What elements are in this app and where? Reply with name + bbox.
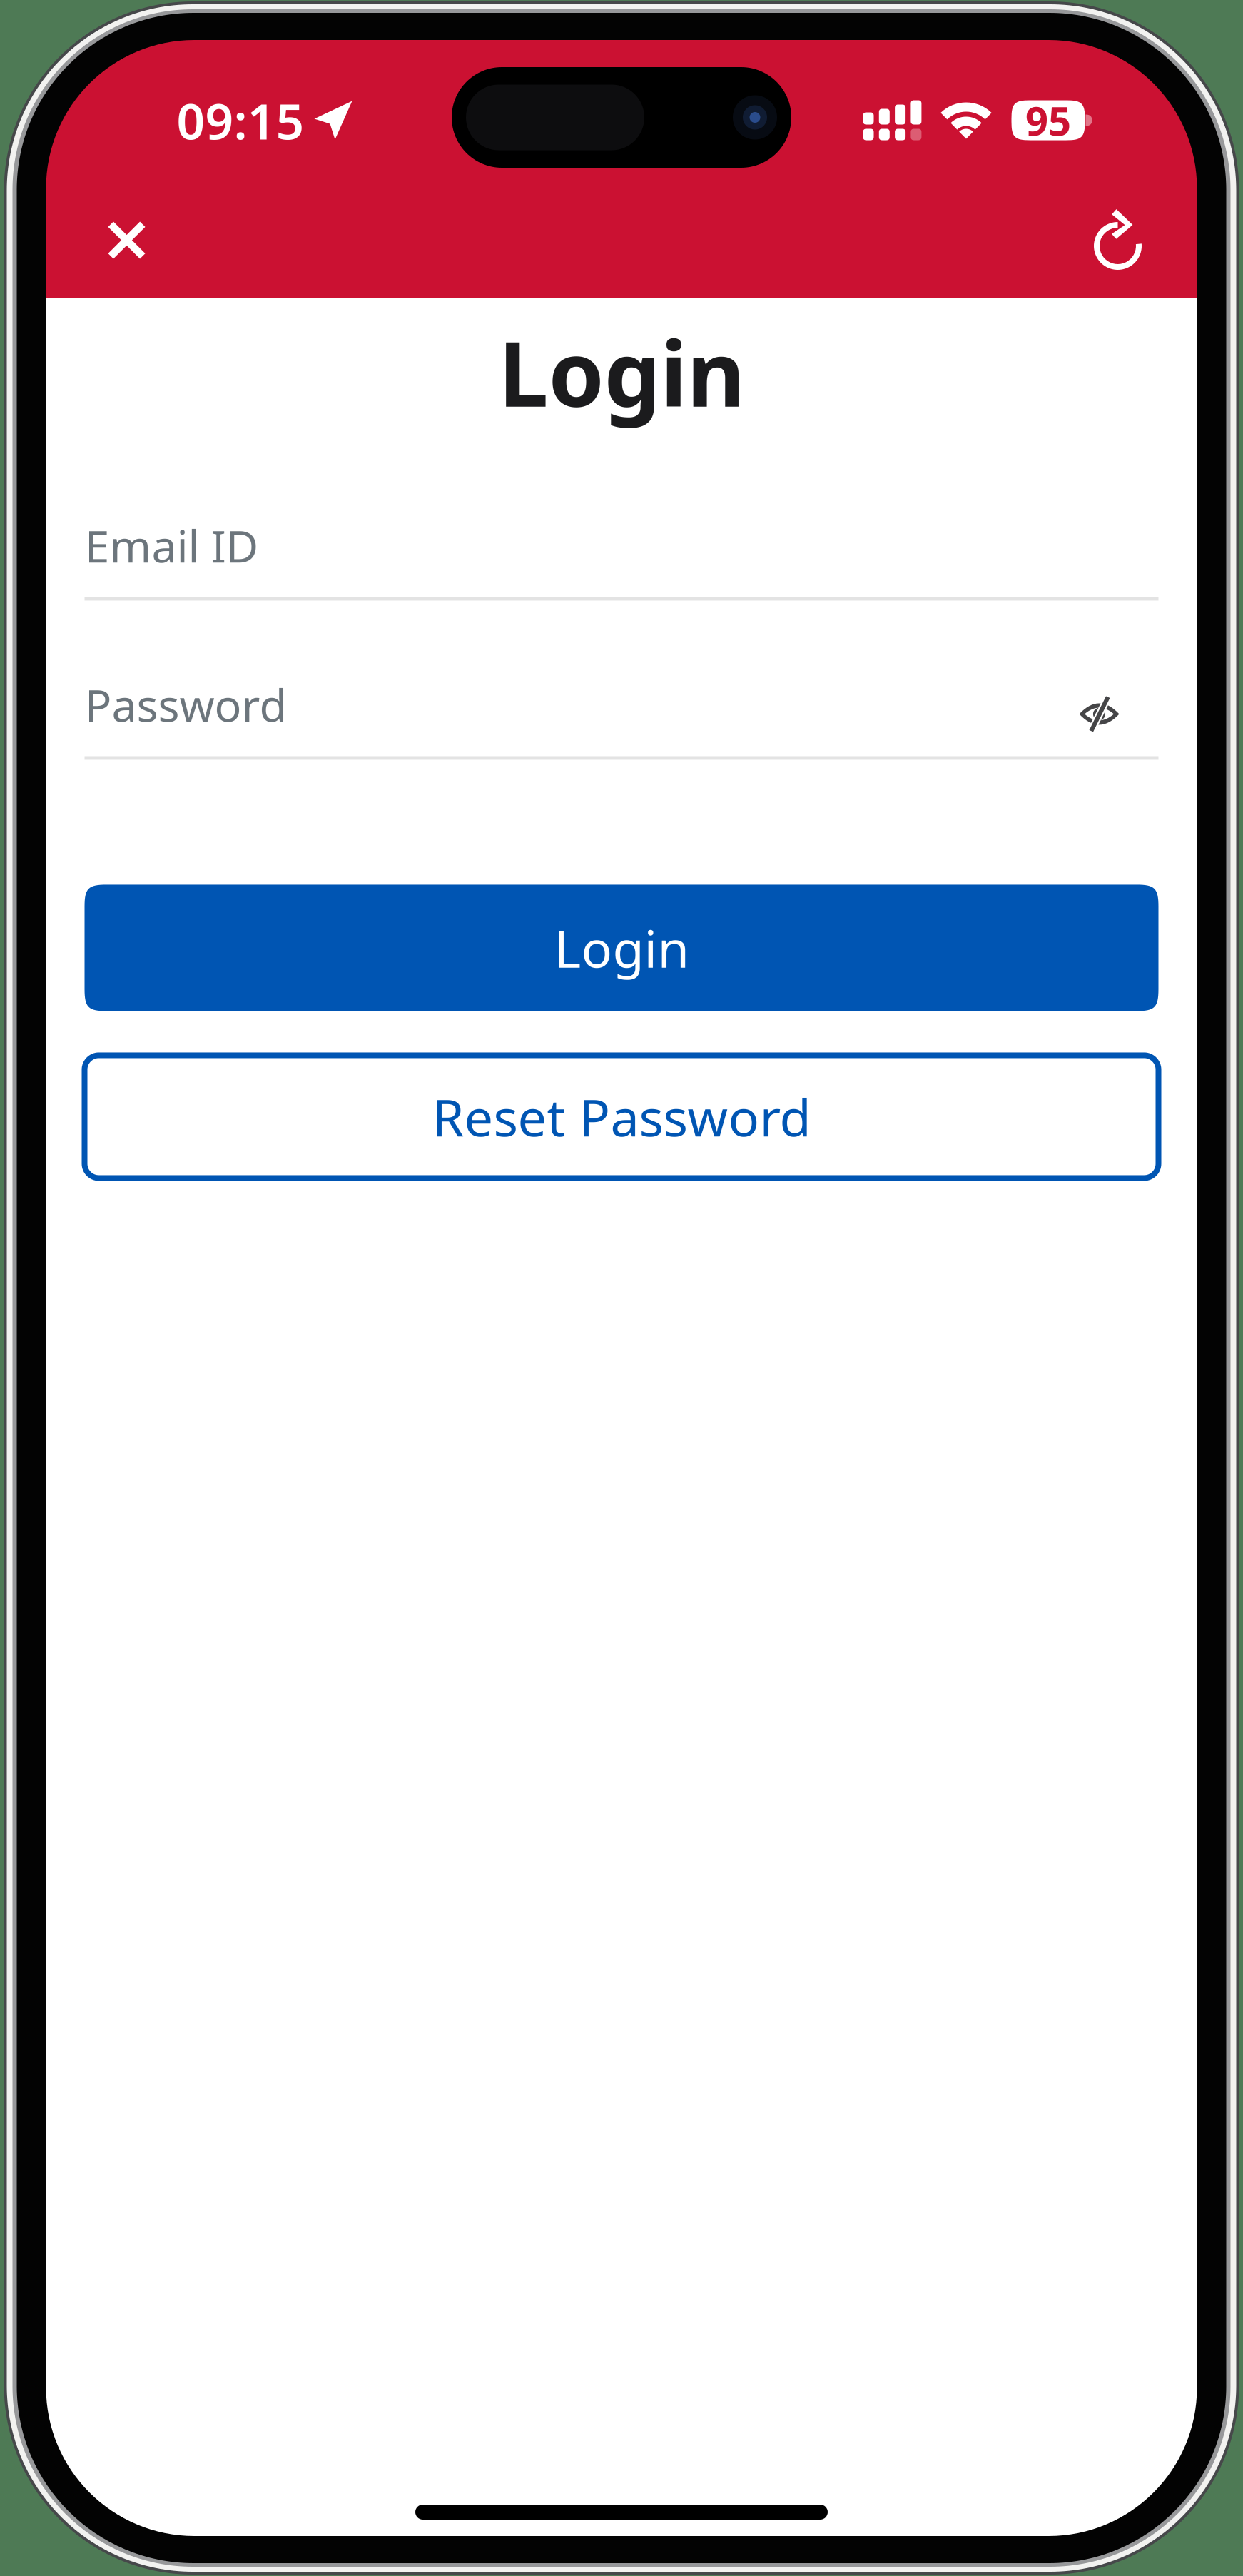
- staticText: Login: [498, 313, 745, 431]
- staticText: Email ID: [85, 516, 259, 575]
- staticText: 09:15: [177, 87, 304, 153]
- staticText: 95: [1025, 94, 1071, 147]
- button[interactable]: Close: [73, 201, 180, 279]
- button[interactable]: Reset Password: [85, 1055, 1158, 1178]
- button[interactable]: Show password: [1079, 675, 1158, 729]
- staticText: Reset Password: [432, 1083, 811, 1151]
- button[interactable]: Refresh: [1065, 201, 1172, 279]
- staticText: Login: [554, 914, 689, 982]
- staticText: Password: [85, 675, 287, 734]
- button[interactable]: Login: [85, 885, 1158, 1011]
